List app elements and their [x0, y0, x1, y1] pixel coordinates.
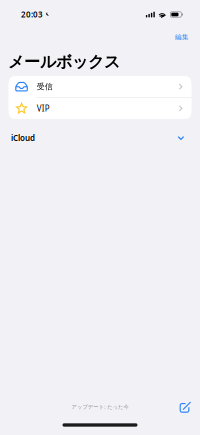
staticText: アップデート: たった今 — [71, 403, 128, 410]
button[interactable]: iCloud — [0, 119, 200, 157]
button[interactable]: VIP — [8, 98, 191, 119]
staticText: VIP — [37, 103, 50, 114]
staticText: 編集 — [175, 33, 189, 41]
staticText: 受信 — [37, 82, 53, 91]
button[interactable]: 受信 — [8, 76, 191, 97]
button[interactable]: 新規メッセージ — [175, 396, 196, 417]
staticText: iCloud — [11, 133, 35, 143]
staticText: メールボックス — [8, 52, 120, 72]
staticText: 20:03 — [21, 9, 43, 20]
button[interactable]: 編集 — [169, 29, 195, 45]
